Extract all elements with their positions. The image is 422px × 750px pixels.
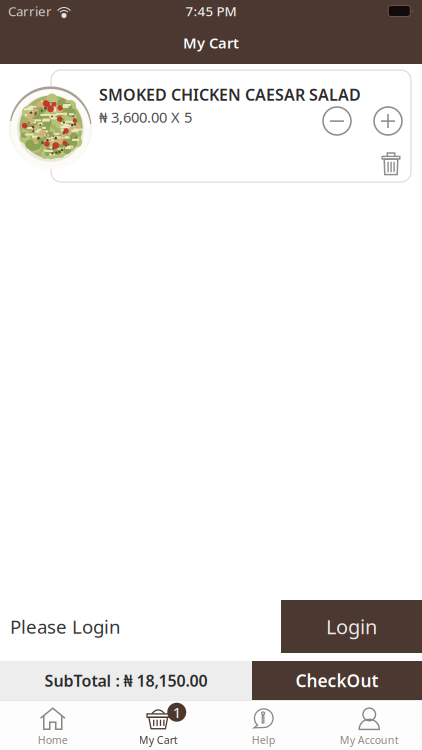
staticText: 1 [173, 702, 181, 722]
staticText: ₦ 3,600.00 X 5 [99, 107, 192, 127]
button[interactable]: Increase quantity [373, 106, 403, 136]
staticText: CheckOut [295, 669, 378, 692]
staticText: Please Login [10, 614, 121, 639]
staticText: SMOKED CHICKEN CAESAR SALAD [99, 84, 361, 105]
button[interactable]: Decrease quantity [322, 106, 352, 136]
button[interactable]: My Account [316, 704, 422, 747]
button[interactable]: Help [211, 704, 316, 747]
staticText: Home [38, 733, 68, 747]
staticText: My Account [340, 733, 399, 747]
button[interactable]: 1 [105, 704, 211, 747]
staticText: My Cart [139, 733, 178, 747]
staticText: Carrier [8, 2, 52, 20]
button[interactable]: CheckOut [252, 661, 422, 700]
staticText: My Cart [183, 33, 239, 52]
staticText: SubTotal : ₦ 18,150.00 [44, 670, 207, 691]
staticText: Help [252, 733, 276, 747]
button[interactable]: Home [0, 704, 105, 747]
button[interactable]: Delete item [377, 148, 405, 180]
button[interactable]: Login [281, 600, 422, 653]
staticText: Login [326, 613, 377, 640]
staticText: 7:45 PM [185, 2, 236, 20]
